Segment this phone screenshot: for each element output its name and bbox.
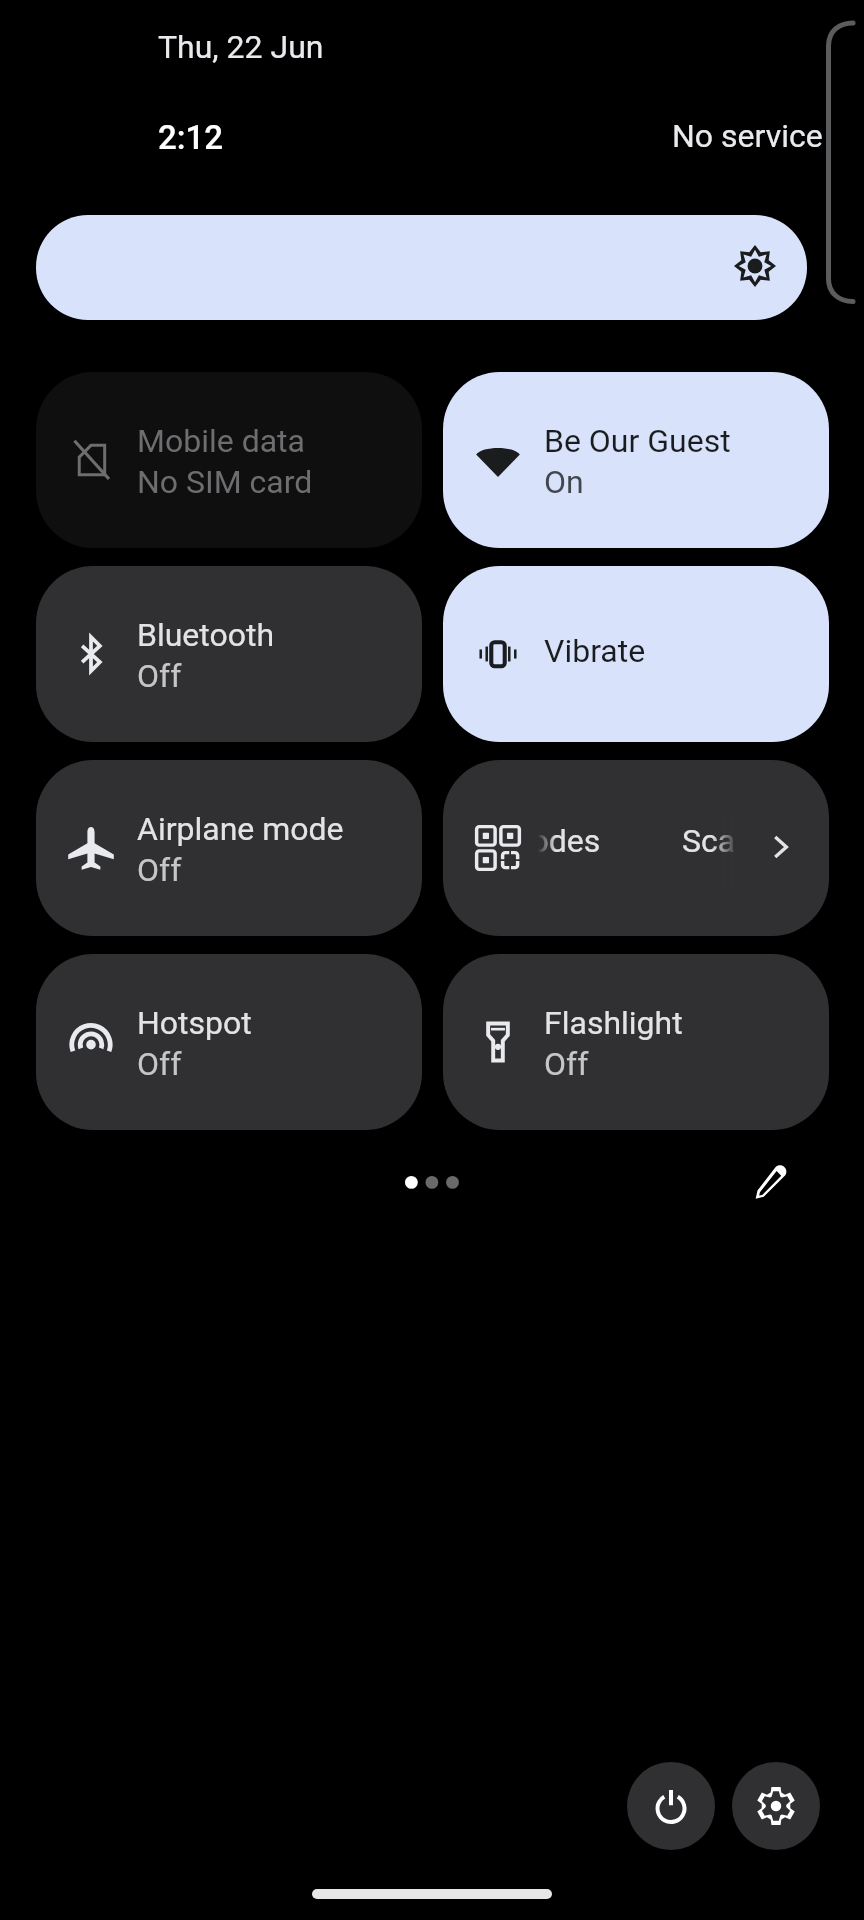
button[interactable]: Flashlight	[443, 954, 829, 1130]
staticText: Thu, 22 Jun	[158, 28, 324, 66]
staticText: Airplane mode	[137, 810, 344, 848]
staticText: Off	[137, 657, 182, 695]
staticText: 2:12	[158, 118, 224, 157]
button[interactable]: Power	[627, 1762, 715, 1850]
staticText: Vibrate	[544, 632, 646, 670]
button[interactable]: Brightness	[36, 215, 807, 320]
staticText: Off	[137, 851, 182, 889]
staticText: On	[544, 463, 584, 501]
staticText: Bluetooth	[137, 616, 275, 654]
staticText: Hotspot	[137, 1004, 252, 1042]
button[interactable]: Bluetooth	[36, 566, 422, 742]
button[interactable]: Airplane mode	[36, 760, 422, 936]
staticText: QR codes	[538, 822, 601, 860]
button[interactable]: Mobile data	[36, 372, 422, 548]
staticText: Flashlight	[544, 1004, 683, 1042]
staticText: Off	[544, 1045, 589, 1083]
staticText: No service	[672, 117, 823, 155]
button[interactable]: QR codes	[443, 760, 829, 936]
button[interactable]: Edit tiles	[737, 1148, 805, 1216]
staticText: Off	[137, 1045, 182, 1083]
button[interactable]: Hotspot	[36, 954, 422, 1130]
staticText: No SIM card	[137, 463, 313, 501]
button[interactable]: Settings	[732, 1762, 820, 1850]
button[interactable]: Vibrate	[443, 566, 829, 742]
button[interactable]: Be Our Guest	[443, 372, 829, 548]
staticText: Scan	[682, 822, 746, 860]
staticText: Be Our Guest	[544, 422, 731, 460]
staticText: Mobile data	[137, 422, 305, 460]
